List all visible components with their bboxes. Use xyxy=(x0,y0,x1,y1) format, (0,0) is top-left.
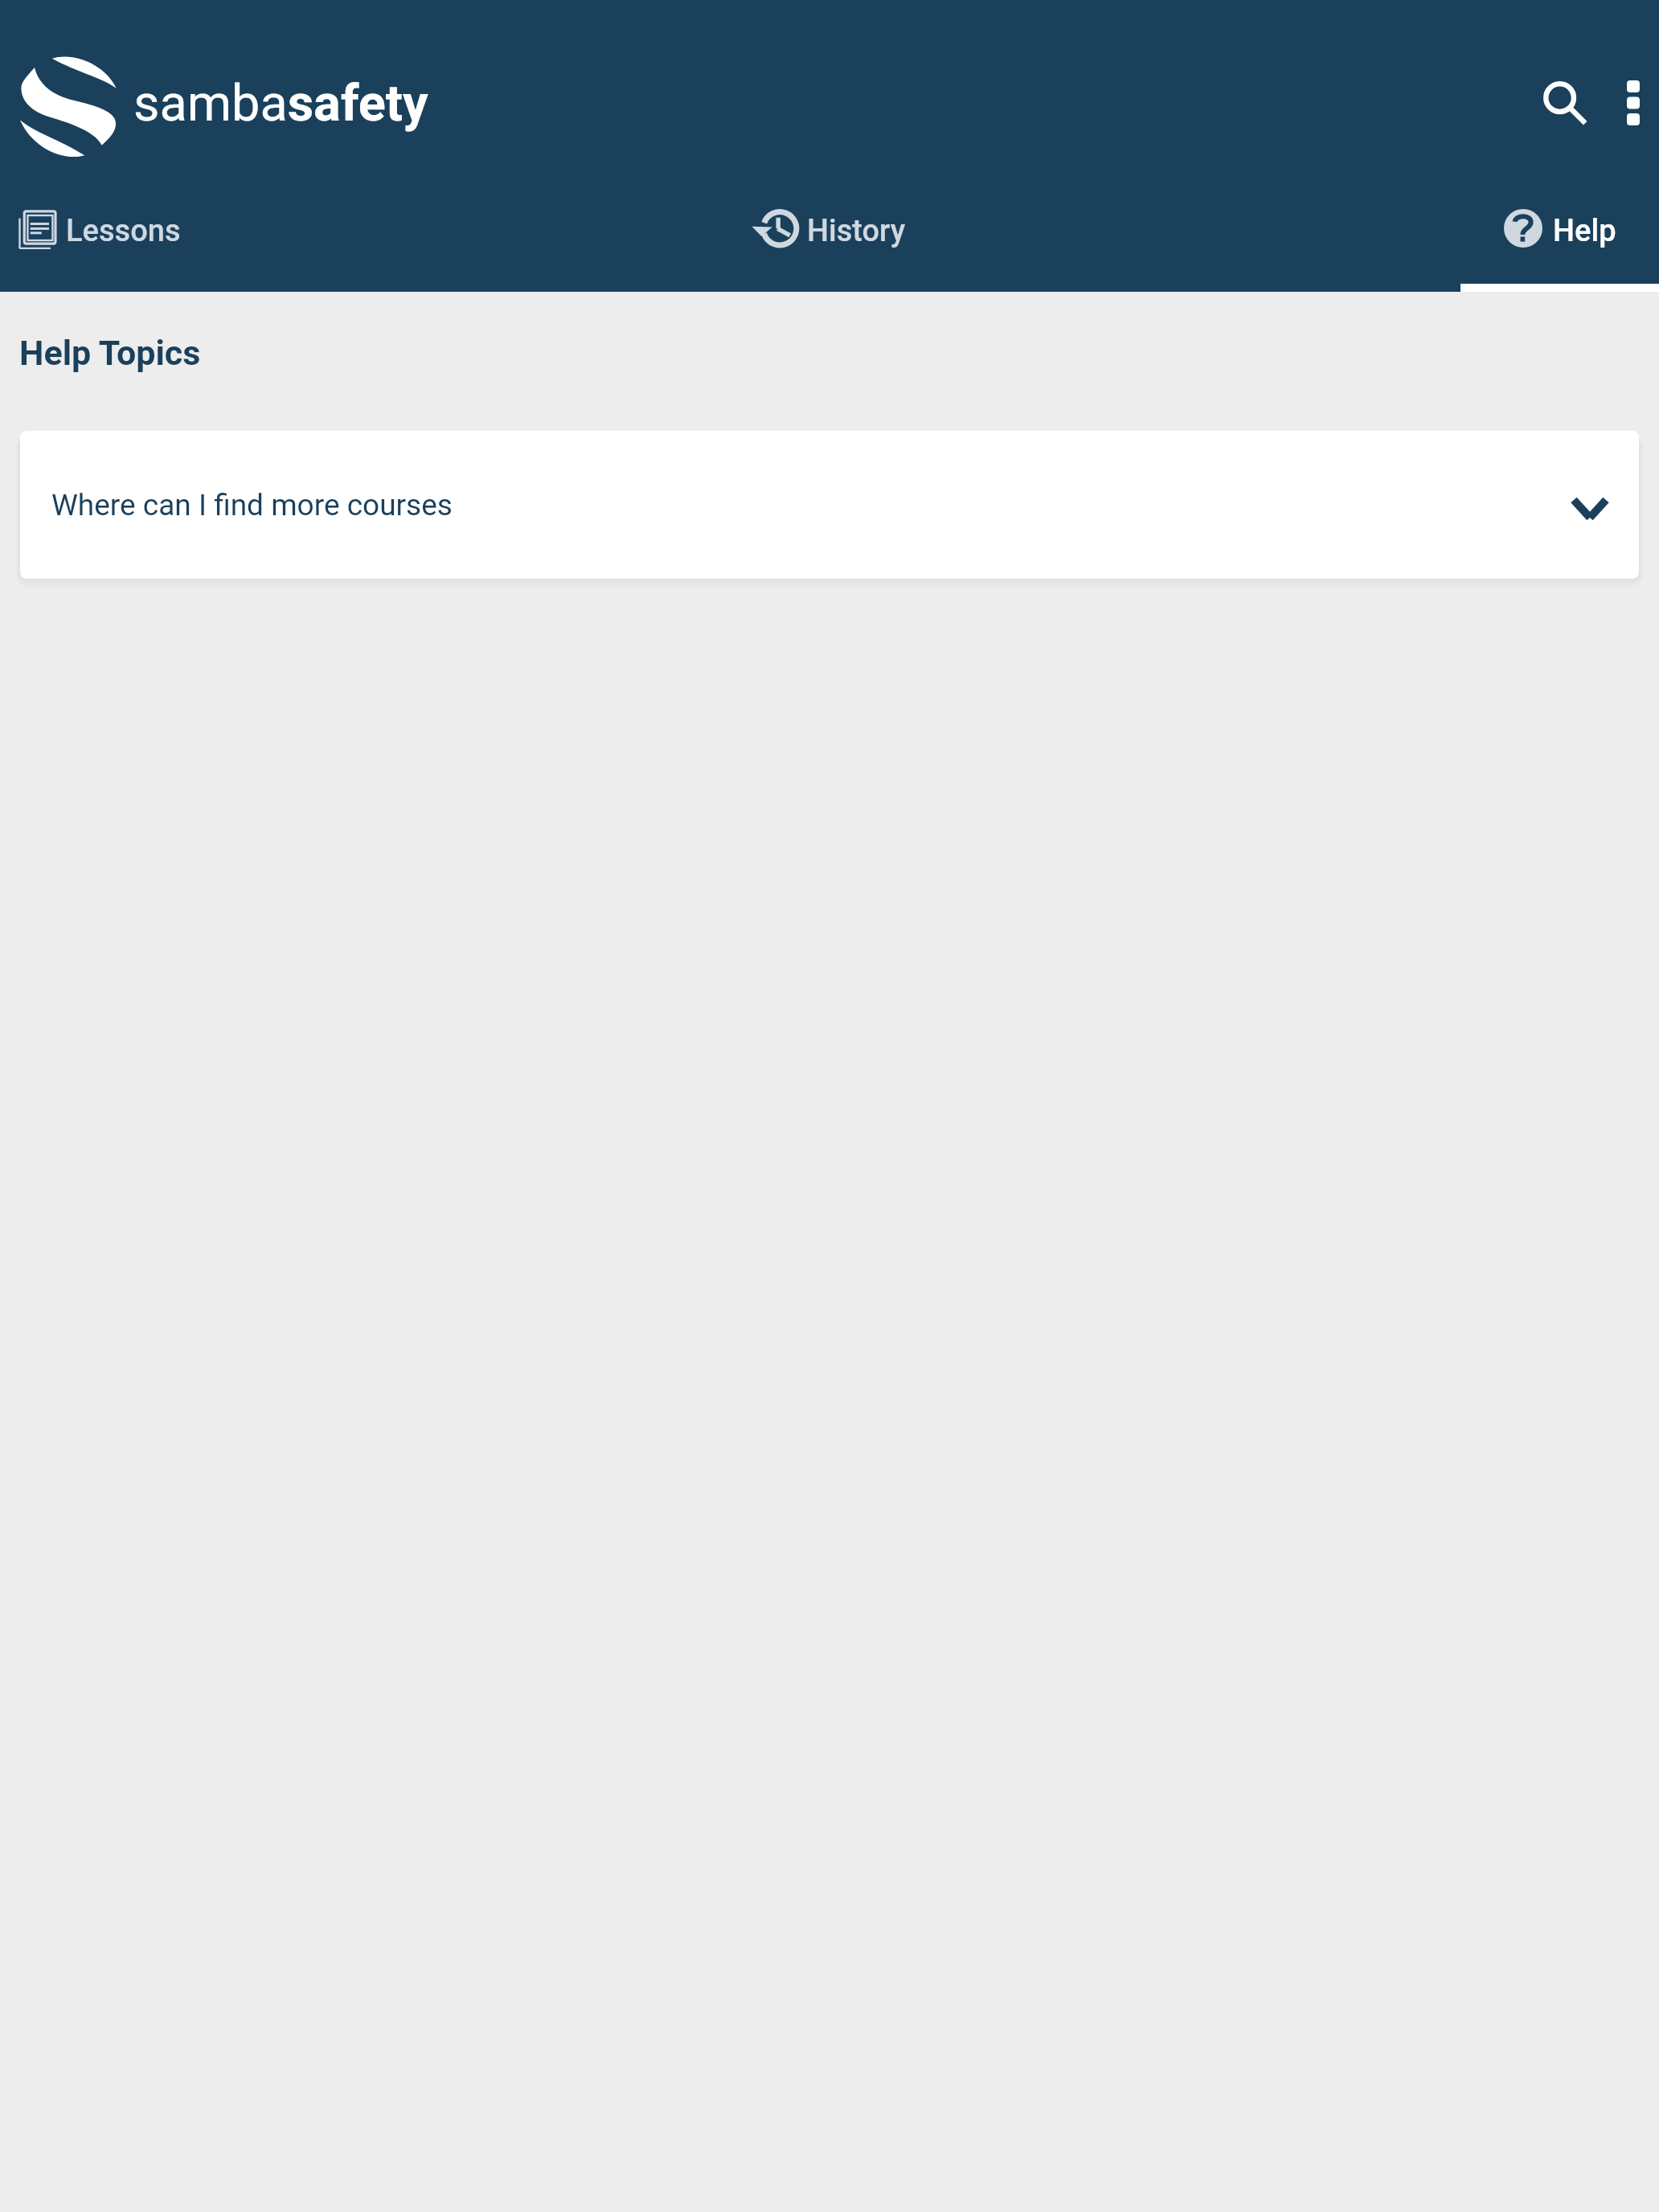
staticText: Help Topics xyxy=(19,333,201,373)
staticText: History xyxy=(807,213,906,249)
button[interactable]: Help xyxy=(1460,198,1659,292)
button[interactable]: History xyxy=(735,198,906,292)
button[interactable]: Search xyxy=(1520,59,1611,147)
button[interactable]: More options xyxy=(1607,59,1659,147)
staticText: sambasafety xyxy=(133,74,428,133)
button[interactable]: Lessons xyxy=(0,198,388,292)
staticText: Help xyxy=(1553,213,1616,249)
button[interactable]: Where can I find more courses xyxy=(20,431,1639,579)
staticText: Where can I find more courses xyxy=(51,488,453,522)
staticText: Lessons xyxy=(66,213,181,249)
